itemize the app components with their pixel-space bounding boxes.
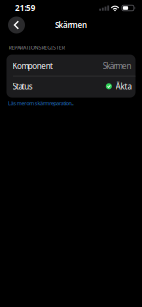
staticText: 21:59: [15, 3, 36, 13]
staticText: REPARATIONSREGISTER: [8, 44, 65, 51]
button[interactable]: Läs mer om skärmreparation...: [8, 100, 74, 107]
staticText: Skärmen: [55, 20, 87, 30]
staticText: Skärmen: [103, 60, 131, 71]
staticText: Komponent: [12, 60, 53, 71]
staticText: Läs mer om skärmreparation...: [8, 100, 74, 107]
button[interactable]: Back: [8, 16, 25, 33]
staticText: Äkta: [115, 81, 131, 92]
staticText: Status: [12, 81, 33, 92]
